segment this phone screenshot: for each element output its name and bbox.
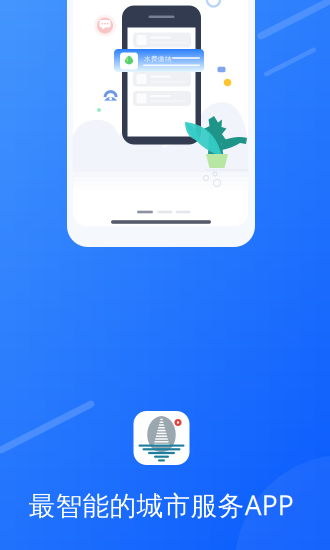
staticText: 最智能的城市服务APP — [28, 487, 293, 523]
staticText: 水费缴纳 — [144, 55, 172, 63]
